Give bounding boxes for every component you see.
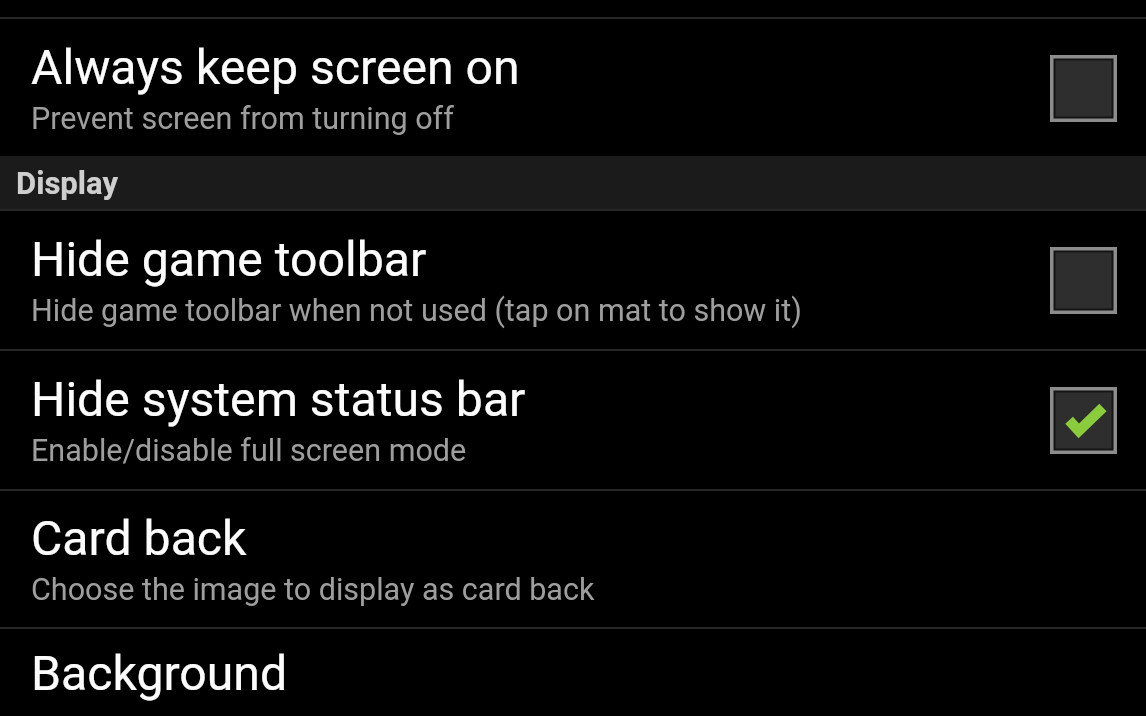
staticText: Always keep screen on [31, 39, 520, 95]
button[interactable]: Always keep screen on [0, 19, 1146, 156]
button[interactable]: Disabled, checkbox [1045, 242, 1121, 318]
button[interactable]: Disabled, checkbox [1045, 50, 1121, 126]
staticText: Hide game toolbar when not used (tap on … [31, 293, 802, 329]
staticText: Prevent screen from turning off [31, 101, 454, 137]
button[interactable]: Hide system status bar [0, 351, 1146, 489]
staticText: Card back [31, 510, 247, 566]
staticText: Hide system status bar [31, 371, 526, 427]
staticText: Display [16, 165, 118, 201]
staticText: Background [31, 645, 288, 701]
button[interactable]: Card back [0, 491, 1146, 627]
button[interactable]: Background [0, 629, 1146, 716]
staticText: Enable/disable full screen mode [31, 433, 467, 469]
button[interactable]: Enabled, checkbox [1045, 382, 1121, 458]
staticText: Choose the image to display as card back [31, 572, 595, 608]
button[interactable]: Hide game toolbar [0, 211, 1146, 349]
staticText: Hide game toolbar [31, 231, 427, 287]
